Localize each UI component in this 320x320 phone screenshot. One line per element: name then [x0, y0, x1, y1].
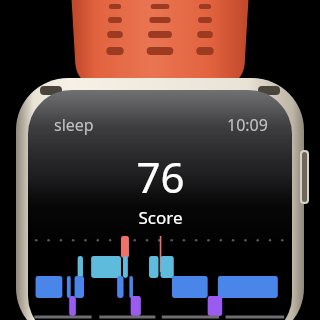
staticText: Score — [138, 206, 183, 229]
staticText: 10:09 — [227, 114, 268, 136]
button[interactable]: Sleep stages hypnogram — [0, 230, 320, 320]
staticText: sleep — [54, 114, 94, 136]
staticText: 76 — [136, 148, 185, 205]
button[interactable]: sleep — [52, 112, 96, 138]
button[interactable]: 76 — [0, 148, 320, 229]
